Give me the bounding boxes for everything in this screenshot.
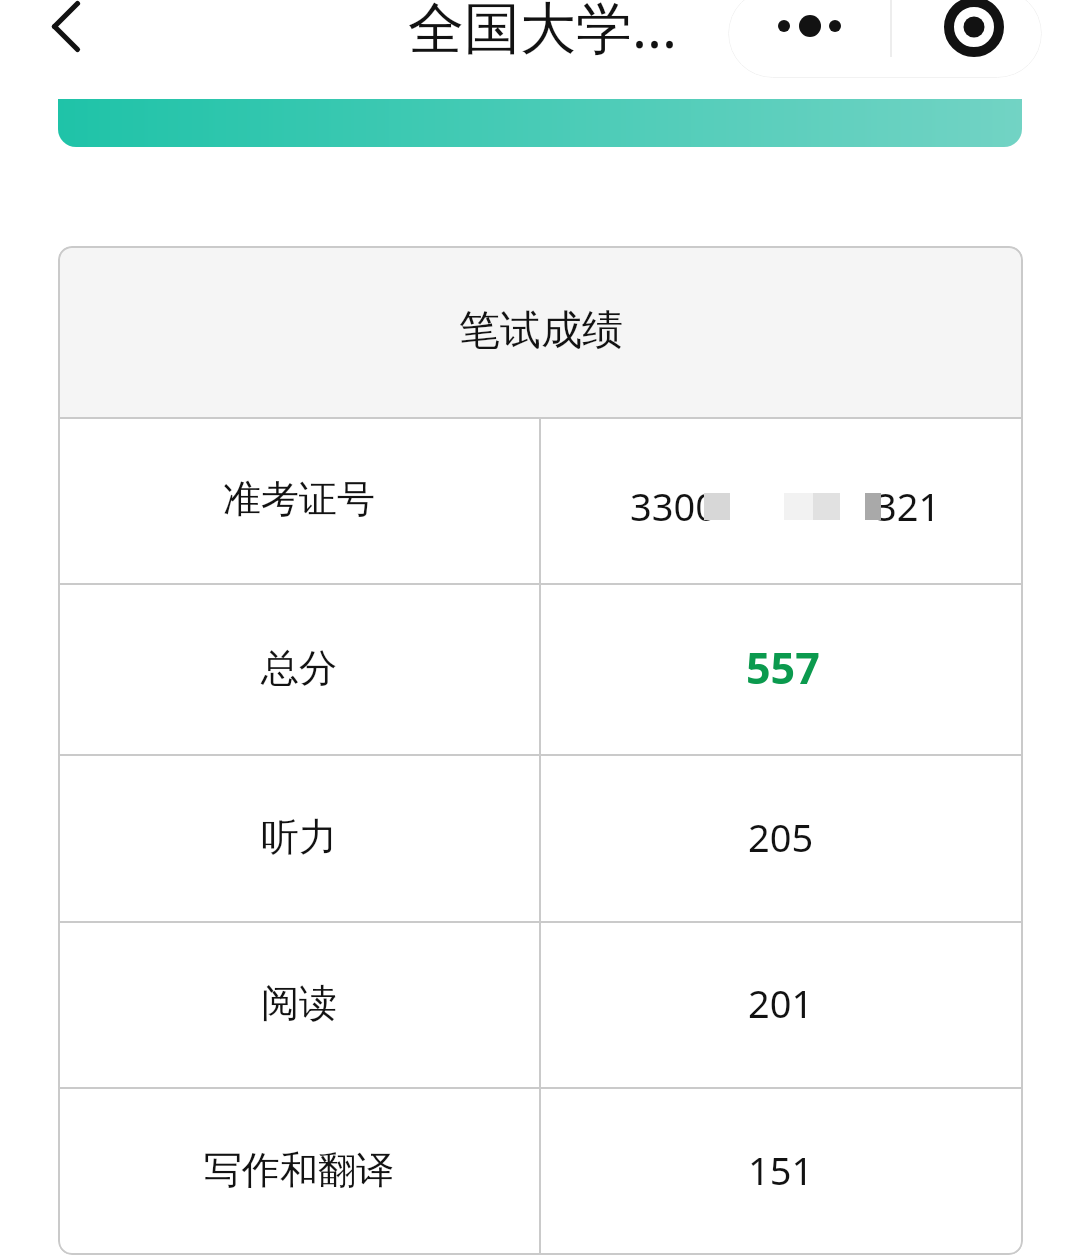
button[interactable]: 总分 [58, 585, 1023, 754]
staticText: 笔试成绩 [459, 305, 623, 357]
staticText: 阅读 [261, 979, 337, 1027]
staticText: 3300 [630, 480, 717, 532]
staticText: 总分 [261, 644, 337, 692]
staticText: 201 [748, 977, 814, 1029]
button[interactable]: 写作和翻译 [58, 1089, 1023, 1255]
staticText: 准考证号 [223, 475, 375, 523]
button[interactable]: Back [20, 0, 110, 60]
button[interactable]: More options [728, 0, 890, 78]
staticText: 全国大学... [408, 0, 678, 64]
staticText: 写作和翻译 [204, 1146, 394, 1194]
button[interactable]: 准考证号 [58, 419, 1023, 583]
button[interactable]: 阅读 [58, 923, 1023, 1087]
staticText: 205 [748, 811, 814, 863]
button[interactable]: Close mini program [892, 0, 1042, 78]
staticText: 听力 [261, 813, 337, 861]
staticText: 151 [748, 1144, 814, 1196]
staticText: 321 [875, 480, 941, 532]
button[interactable]: 听力 [58, 756, 1023, 921]
staticText: 557 [746, 638, 820, 697]
